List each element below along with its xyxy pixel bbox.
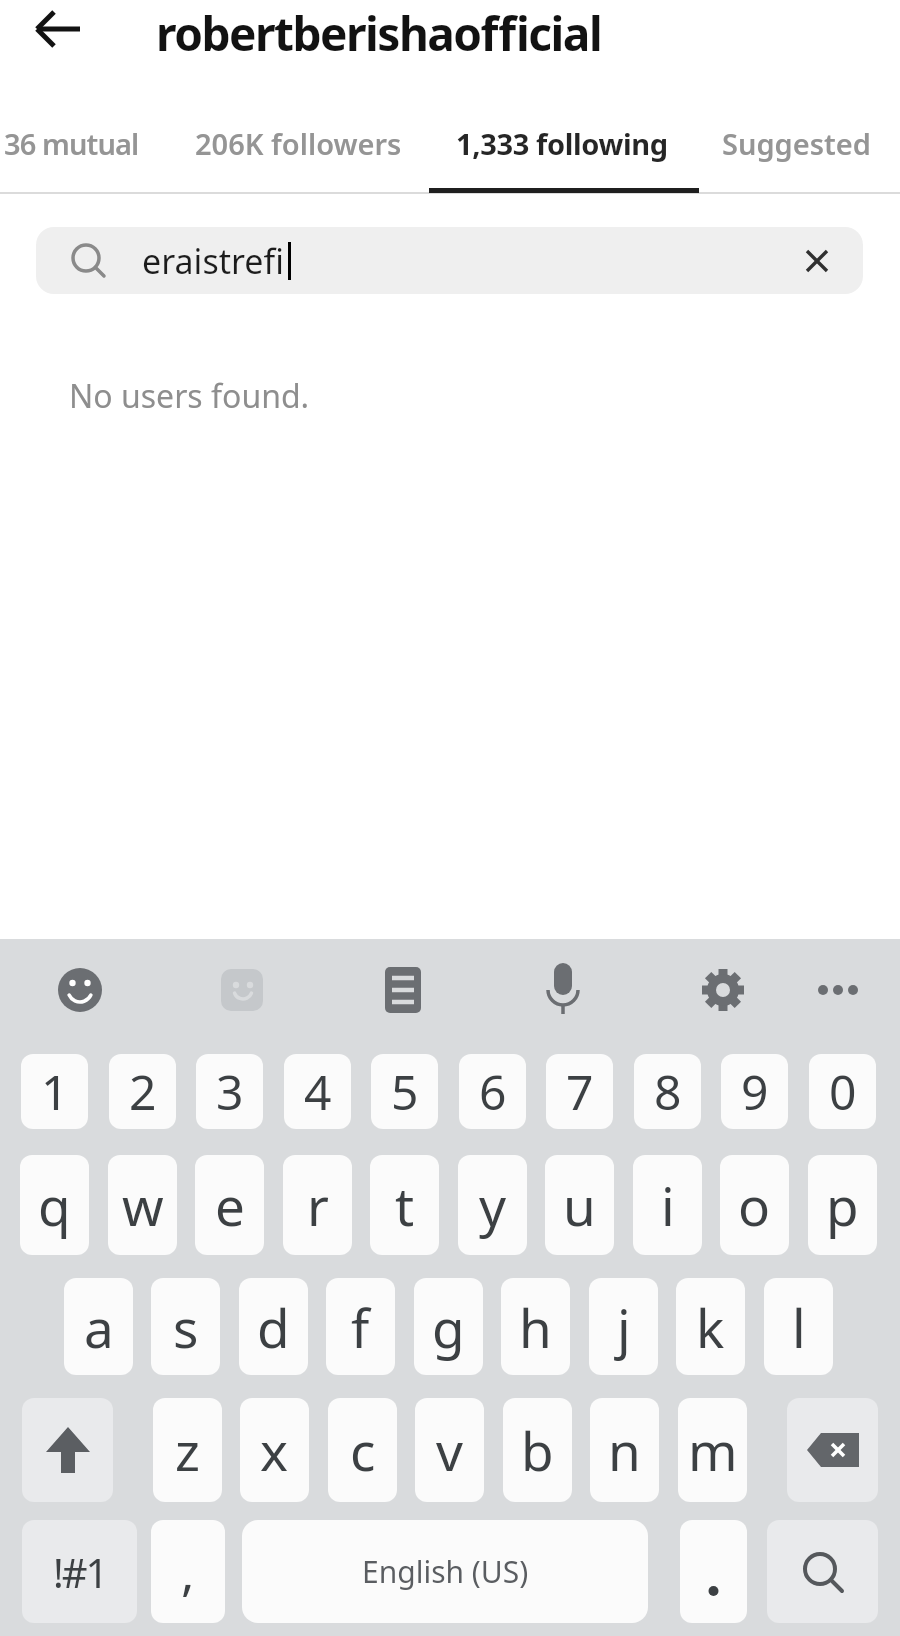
button[interactable]: d [239, 1278, 308, 1375]
button[interactable]: eraistrefi [36, 227, 863, 294]
staticText: c [350, 1414, 376, 1486]
staticText: l [792, 1291, 806, 1363]
staticText: k [696, 1291, 725, 1363]
button[interactable]: 3 [196, 1054, 263, 1129]
staticText: No users found. [69, 374, 310, 418]
button[interactable]: g [414, 1278, 483, 1375]
button[interactable]: 7 [546, 1054, 613, 1129]
button[interactable]: 9 [721, 1054, 788, 1129]
staticText: o [738, 1169, 771, 1241]
staticText: 5 [391, 1059, 419, 1124]
button[interactable]: f [326, 1278, 395, 1375]
staticText: 2 [129, 1059, 157, 1124]
button[interactable] [680, 1520, 747, 1623]
button[interactable]: 2 [109, 1054, 176, 1129]
button[interactable]: 6 [459, 1054, 526, 1129]
button[interactable]: b [503, 1398, 572, 1502]
button[interactable]: x [240, 1398, 309, 1502]
button[interactable]: k [676, 1278, 745, 1375]
staticText: s [173, 1291, 199, 1363]
staticText: 36 mutual [4, 124, 139, 163]
button[interactable]: c [328, 1398, 397, 1502]
staticText: p [826, 1169, 859, 1241]
staticText: z [175, 1414, 200, 1486]
staticText: n [608, 1414, 641, 1486]
staticText: g [432, 1291, 465, 1363]
button[interactable]: p [808, 1155, 877, 1255]
button[interactable]: h [501, 1278, 570, 1375]
staticText: 6 [479, 1059, 507, 1124]
button[interactable] [22, 1398, 113, 1502]
button[interactable]: 206K followers [195, 118, 402, 168]
staticText: v [436, 1414, 463, 1486]
button[interactable]: 1,333 following [456, 118, 668, 168]
staticText: d [257, 1291, 290, 1363]
staticText: e [215, 1169, 245, 1241]
button[interactable]: i [633, 1155, 702, 1255]
button[interactable]: m [678, 1398, 747, 1502]
button[interactable]: l [764, 1278, 833, 1375]
button[interactable] [36, 11, 82, 47]
button[interactable]: z [153, 1398, 222, 1502]
staticText: a [84, 1291, 114, 1363]
button[interactable]: 8 [634, 1054, 701, 1129]
button[interactable]: a [64, 1278, 133, 1375]
staticText: h [519, 1291, 552, 1363]
staticText: m [688, 1414, 738, 1486]
button[interactable]: r [283, 1155, 352, 1255]
button[interactable] [806, 250, 828, 272]
button[interactable]: e [195, 1155, 264, 1255]
button[interactable]: Suggested [722, 118, 871, 168]
staticText: !#1 [53, 1545, 107, 1599]
staticText: w [122, 1169, 164, 1241]
button[interactable]: t [370, 1155, 439, 1255]
button[interactable]: j [589, 1278, 658, 1375]
staticText: r [307, 1169, 329, 1241]
button[interactable]: 0 [809, 1054, 876, 1129]
staticText: 4 [304, 1059, 332, 1124]
button[interactable]: s [151, 1278, 220, 1375]
staticText: 3 [216, 1059, 244, 1124]
button[interactable]: , [151, 1520, 225, 1623]
staticText: , [181, 1538, 195, 1606]
staticText: English (US) [362, 1551, 529, 1592]
staticText: 1,333 following [456, 124, 668, 163]
staticText: 7 [566, 1059, 594, 1124]
staticText: 9 [741, 1059, 769, 1124]
staticText: u [563, 1169, 596, 1241]
staticText: f [351, 1291, 370, 1363]
button[interactable]: English (US) [242, 1520, 648, 1623]
button[interactable]: o [720, 1155, 789, 1255]
staticText: Suggested [722, 124, 871, 163]
button[interactable]: v [415, 1398, 484, 1502]
button[interactable]: 36 mutual [4, 118, 139, 168]
button[interactable]: n [590, 1398, 659, 1502]
staticText: 0 [829, 1059, 857, 1124]
staticText: 8 [654, 1059, 682, 1124]
button[interactable]: 4 [284, 1054, 351, 1129]
staticText: 1 [41, 1059, 69, 1124]
button[interactable]: 5 [371, 1054, 438, 1129]
button[interactable]: w [108, 1155, 177, 1255]
staticText: t [395, 1169, 415, 1241]
staticText: y [479, 1169, 507, 1241]
button[interactable] [767, 1520, 878, 1623]
staticText: q [38, 1169, 71, 1241]
staticText: eraistrefi [142, 238, 284, 284]
staticText: b [521, 1414, 554, 1486]
button[interactable]: u [545, 1155, 614, 1255]
staticText: i [661, 1169, 675, 1241]
staticText: x [260, 1414, 289, 1486]
button[interactable]: 1 [21, 1054, 88, 1129]
staticText: 206K followers [195, 124, 402, 163]
button[interactable]: !#1 [22, 1520, 137, 1623]
button[interactable] [787, 1398, 878, 1502]
staticText: j [617, 1291, 631, 1363]
button[interactable]: q [20, 1155, 89, 1255]
button[interactable]: y [458, 1155, 527, 1255]
staticText: robertberishaofficial [156, 2, 602, 54]
